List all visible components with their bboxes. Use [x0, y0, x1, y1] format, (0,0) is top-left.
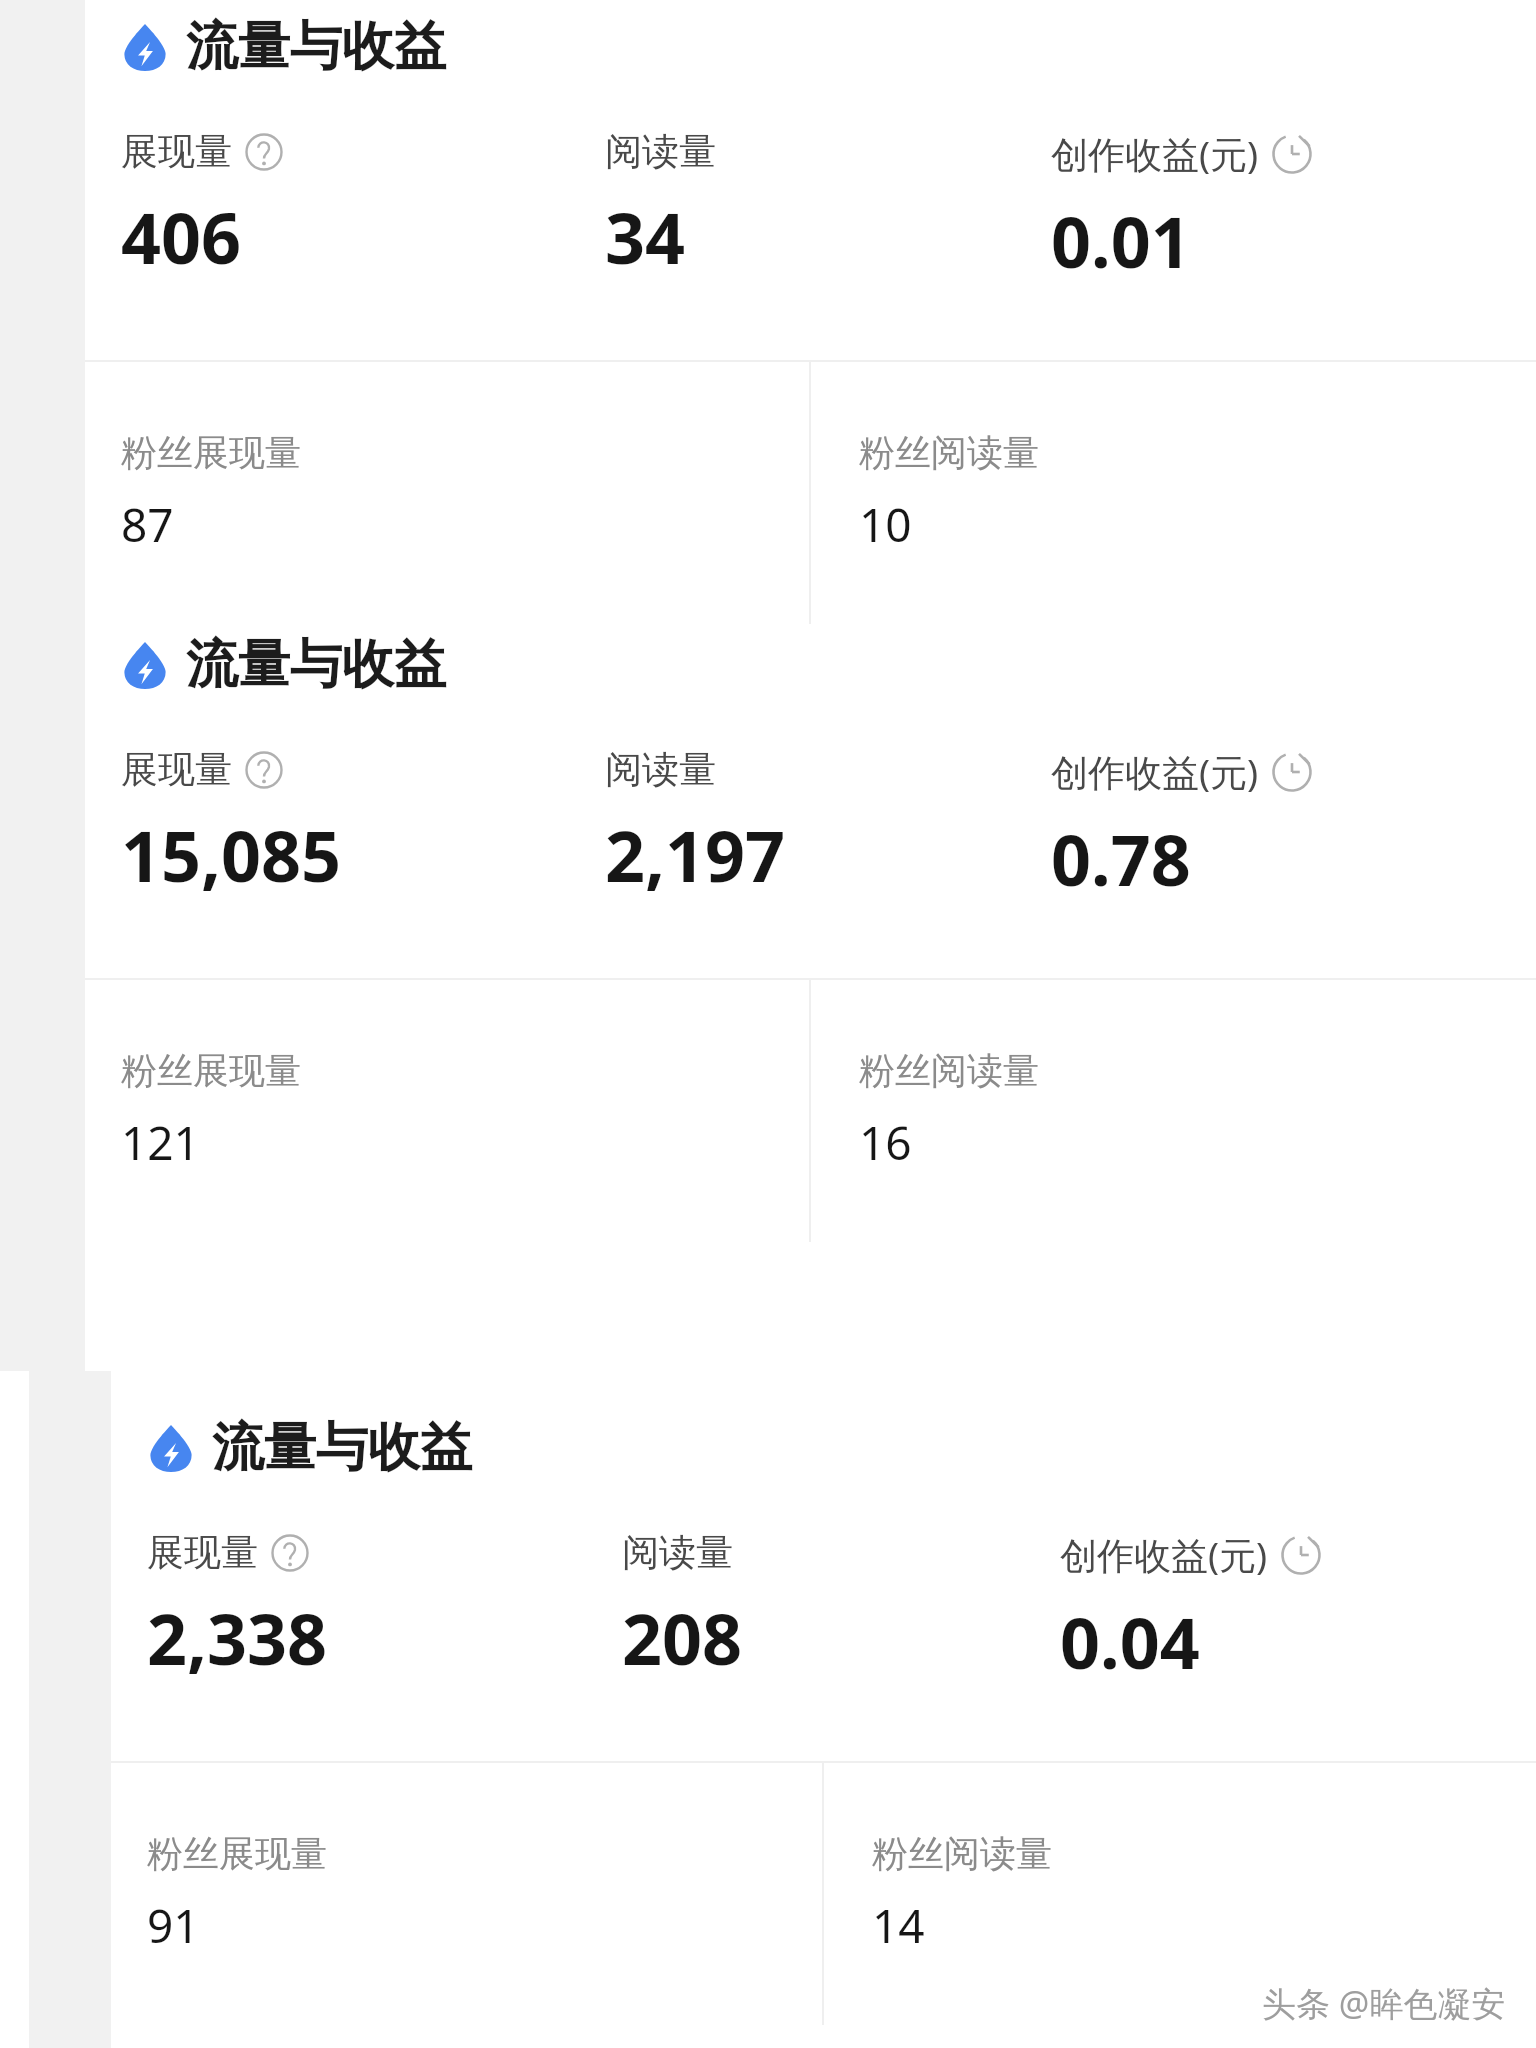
button[interactable]: 粉丝阅读量 — [859, 1048, 1039, 1174]
button[interactable]: 流量与收益 — [85, 632, 1536, 698]
button[interactable]: 阅读量 — [605, 128, 1051, 284]
staticText: 15,085 — [121, 807, 342, 902]
staticText: 创作收益(元) — [1060, 1529, 1268, 1580]
staticText: 208 — [622, 1590, 743, 1685]
button[interactable]: 流量与收益 — [111, 1415, 1536, 1481]
button[interactable]: 粉丝展现量 — [121, 430, 301, 556]
other: 说明 — [245, 133, 283, 171]
other: 历史 — [1272, 752, 1312, 792]
other: 说明 — [271, 1534, 309, 1572]
other: 历史 — [1272, 134, 1312, 174]
staticText: 91 — [147, 1894, 200, 1957]
staticText: 头条 @眸色凝安 — [1262, 1980, 1506, 2026]
staticText: 87 — [121, 493, 174, 556]
staticText: 14 — [872, 1894, 925, 1957]
button[interactable]: 展现量 — [147, 1529, 622, 1685]
staticText: 粉丝阅读量 — [859, 1048, 1039, 1093]
other: 流量与收益 — [147, 1424, 195, 1472]
staticText: 流量与收益 — [186, 14, 446, 80]
other: 流量与收益 — [121, 23, 169, 71]
button[interactable]: 流量与收益 — [85, 14, 1536, 80]
staticText: 流量与收益 — [186, 632, 446, 698]
staticText: 展现量 — [121, 128, 232, 175]
staticText: 406 — [121, 189, 242, 284]
staticText: 粉丝展现量 — [147, 1831, 327, 1876]
staticText: 121 — [121, 1111, 200, 1174]
staticText: 2,338 — [147, 1590, 328, 1685]
other: 流量与收益 — [121, 641, 169, 689]
staticText: 0.04 — [1060, 1594, 1200, 1689]
staticText: 展现量 — [121, 746, 232, 793]
button[interactable]: 展现量 — [121, 128, 605, 284]
staticText: 0.78 — [1051, 811, 1191, 906]
button[interactable]: 展现量 — [121, 746, 605, 902]
staticText: 展现量 — [147, 1529, 258, 1576]
button[interactable]: 阅读量 — [605, 746, 1051, 902]
button[interactable]: 创作收益(元) — [1060, 1529, 1536, 1689]
staticText: 0.01 — [1051, 193, 1191, 288]
staticText: 创作收益(元) — [1051, 128, 1259, 179]
staticText: 阅读量 — [622, 1529, 733, 1576]
staticText: 流量与收益 — [212, 1415, 472, 1481]
button[interactable]: 粉丝展现量 — [121, 1048, 301, 1174]
staticText: 阅读量 — [605, 128, 716, 175]
other: 说明 — [245, 751, 283, 789]
button[interactable]: 创作收益(元) — [1051, 746, 1536, 906]
button[interactable]: 粉丝阅读量 — [859, 430, 1039, 556]
staticText: 粉丝展现量 — [121, 430, 301, 475]
staticText: 16 — [859, 1111, 912, 1174]
staticText: 2,197 — [605, 807, 786, 902]
staticText: 粉丝阅读量 — [859, 430, 1039, 475]
staticText: 10 — [859, 493, 912, 556]
button[interactable]: 阅读量 — [622, 1529, 1060, 1685]
button[interactable]: 粉丝展现量 — [147, 1831, 327, 1957]
staticText: 粉丝阅读量 — [872, 1831, 1052, 1876]
staticText: 34 — [605, 189, 686, 284]
other: 历史 — [1281, 1535, 1321, 1575]
staticText: 创作收益(元) — [1051, 746, 1259, 797]
staticText: 阅读量 — [605, 746, 716, 793]
button[interactable]: 粉丝阅读量 — [872, 1831, 1052, 1957]
button[interactable]: 创作收益(元) — [1051, 128, 1536, 288]
staticText: 粉丝展现量 — [121, 1048, 301, 1093]
